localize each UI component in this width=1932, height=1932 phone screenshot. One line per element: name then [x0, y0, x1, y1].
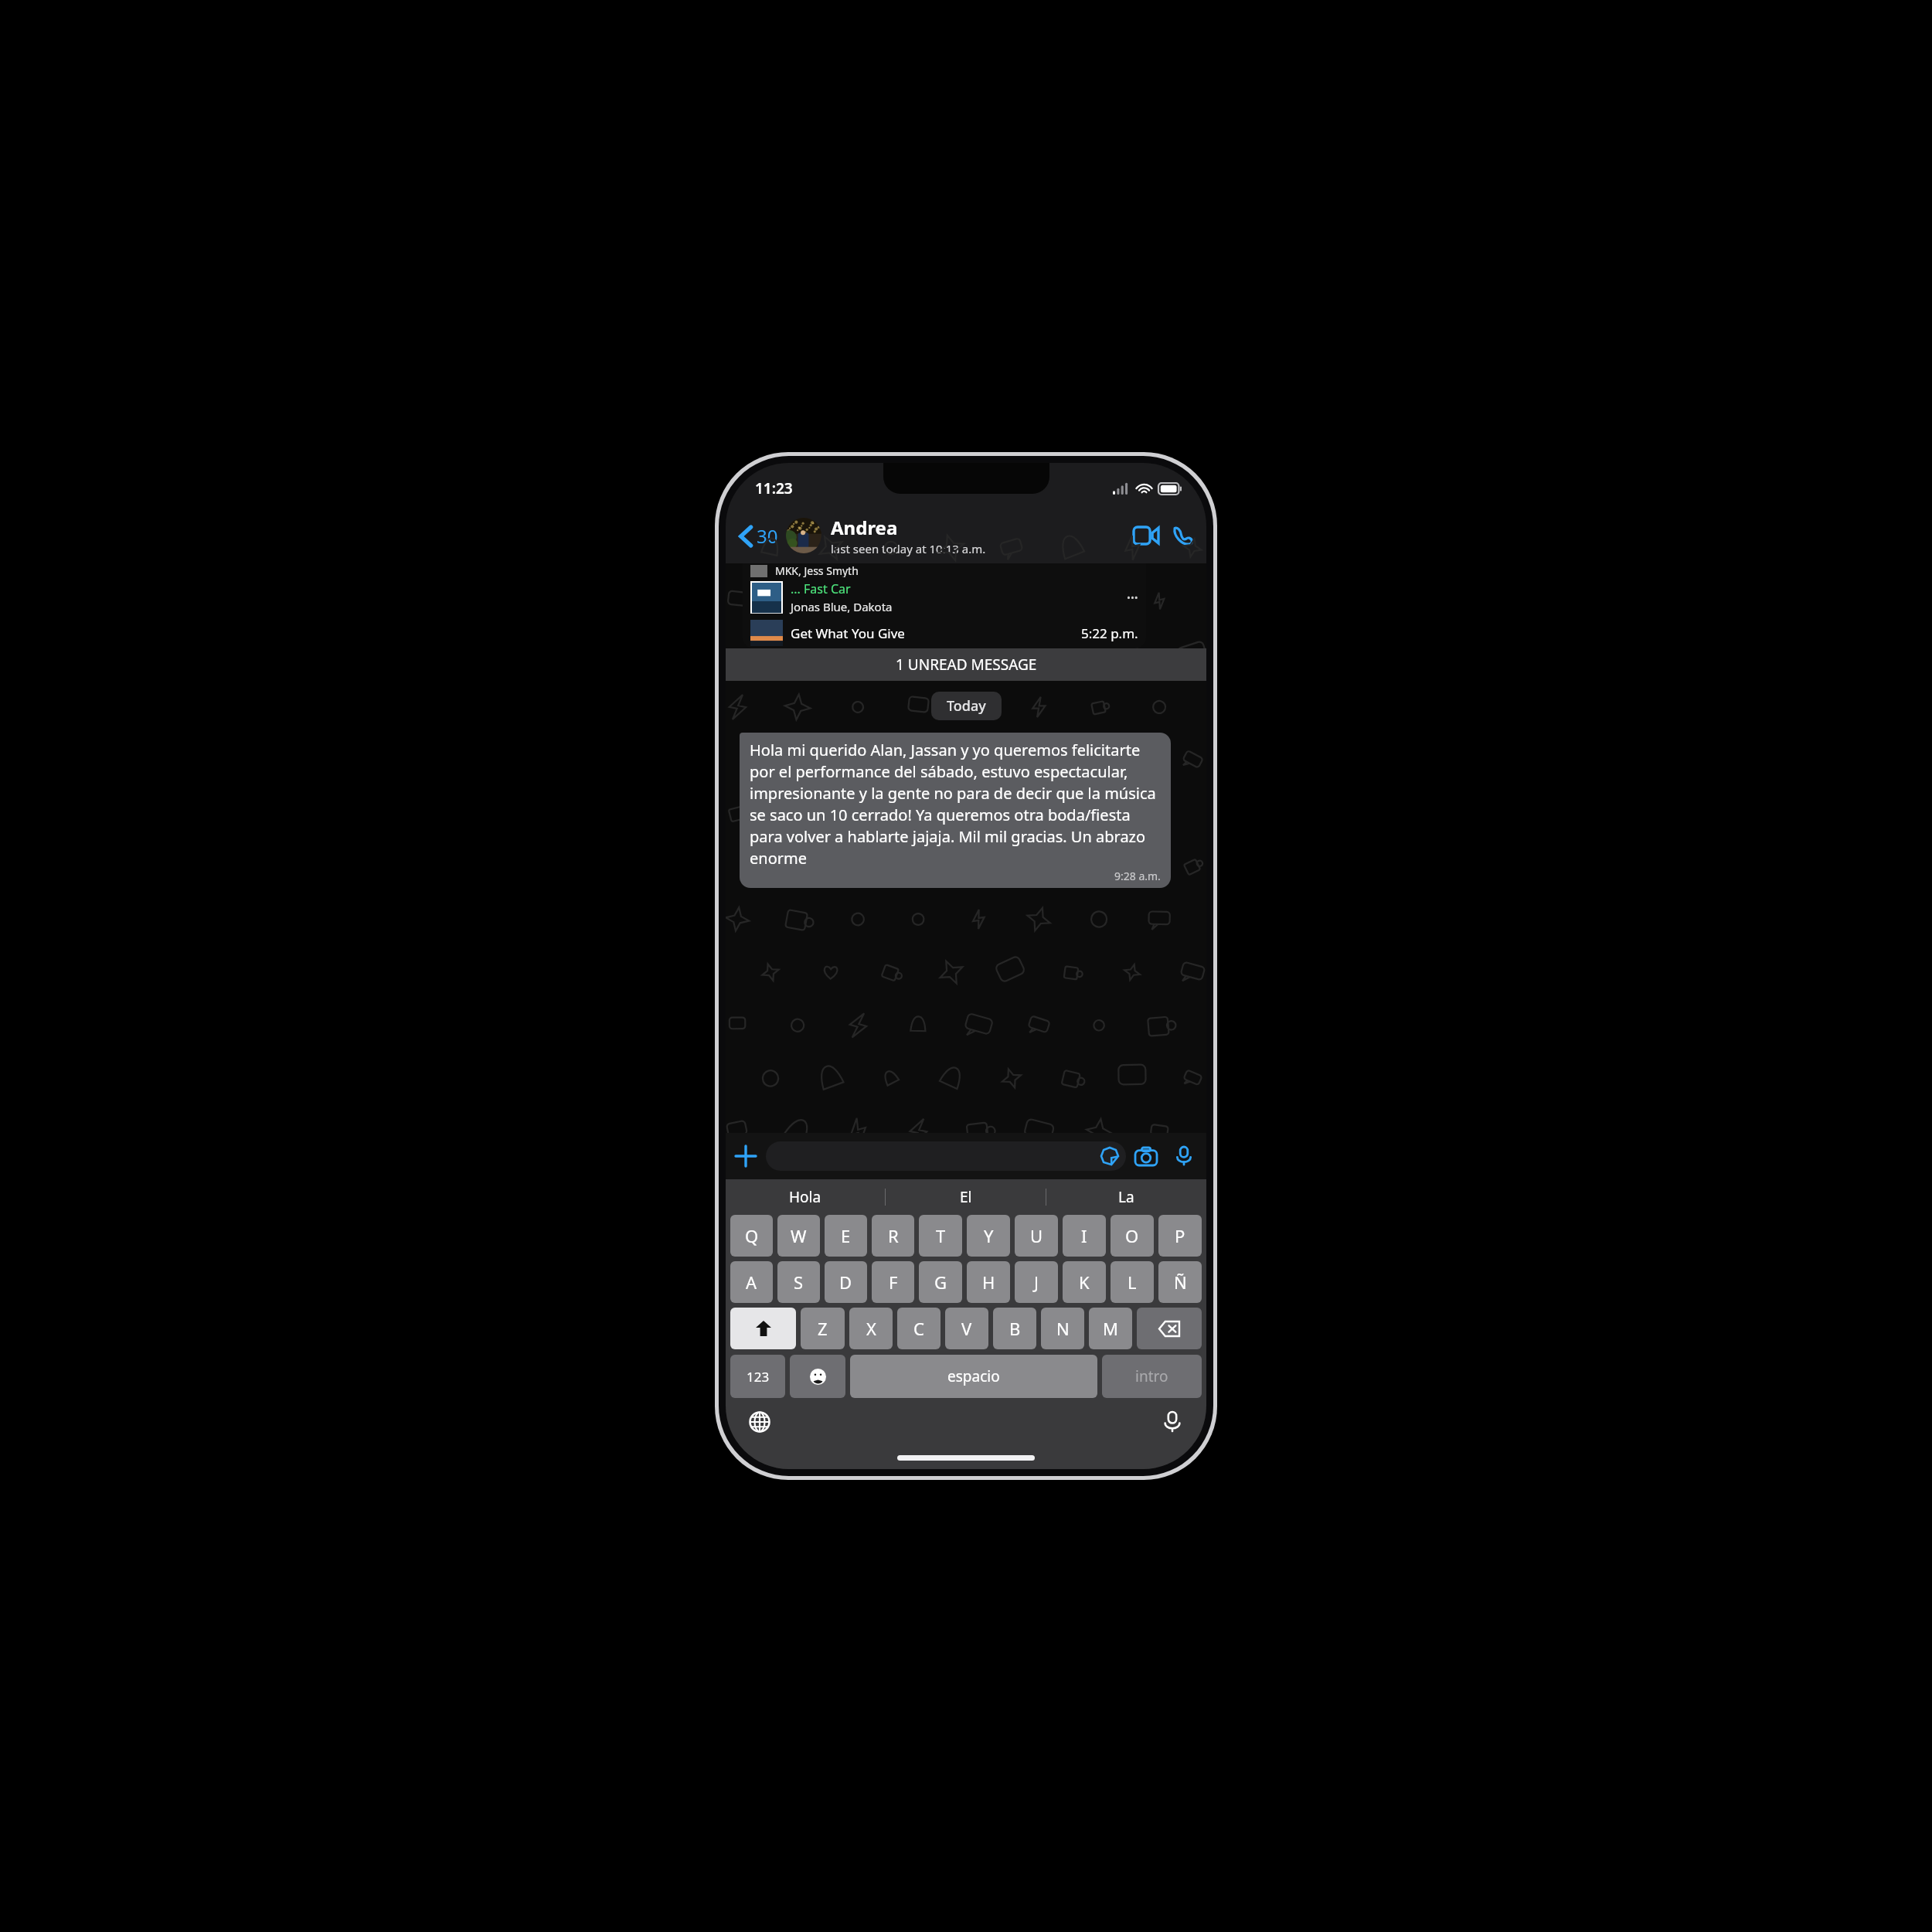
button[interactable]: I [1063, 1215, 1106, 1257]
button[interactable]: Today [947, 696, 986, 716]
button[interactable]: Hola [726, 1179, 885, 1215]
button[interactable]: A [730, 1261, 773, 1303]
button[interactable]: Change keyboard [743, 1405, 777, 1439]
button[interactable]: 30 [726, 517, 783, 555]
button[interactable]: Backspace [1137, 1308, 1202, 1349]
button[interactable]: Q [730, 1215, 773, 1257]
button[interactable]: Voice message [1166, 1136, 1202, 1176]
staticText: I [1081, 1224, 1087, 1247]
staticText: Get What You Give [791, 624, 905, 642]
staticText: Hola mi querido Alan, Jassan y yo querem… [750, 740, 1161, 869]
button[interactable]: H [967, 1261, 1010, 1303]
staticText: T [936, 1224, 946, 1247]
button[interactable]: Hola mi querido Alan, Jassan y yo querem… [740, 733, 1171, 888]
button[interactable]: O [1111, 1215, 1154, 1257]
staticText: El [960, 1187, 972, 1207]
button[interactable]: Video call [1126, 515, 1166, 556]
button[interactable]: L [1111, 1261, 1154, 1303]
staticText: Jonas Blue, Dakota [791, 599, 893, 614]
button[interactable]: X [849, 1308, 893, 1349]
staticText: Hola [789, 1187, 821, 1207]
staticText: X [866, 1317, 876, 1340]
button[interactable]: Emoji [790, 1355, 845, 1398]
button[interactable]: K [1063, 1261, 1106, 1303]
staticText: R [888, 1224, 899, 1247]
staticText: M [1103, 1317, 1118, 1340]
staticText: Z [818, 1317, 828, 1340]
staticText: H [982, 1270, 995, 1294]
staticText: C [913, 1317, 924, 1340]
staticText: espacio [947, 1366, 1000, 1386]
staticText: K [1079, 1270, 1090, 1294]
staticText: 5:22 p.m. [1081, 624, 1138, 642]
staticText: U [1030, 1224, 1043, 1247]
staticText: Today [947, 696, 986, 716]
staticText: F [889, 1270, 898, 1294]
staticText: Ñ [1174, 1270, 1187, 1294]
staticText: intro [1135, 1366, 1168, 1386]
staticText: A [746, 1270, 757, 1294]
staticText: S [794, 1270, 804, 1294]
staticText: B [1009, 1317, 1021, 1340]
button[interactable]: Dictation [1155, 1405, 1189, 1439]
button[interactable]: 123 [730, 1355, 785, 1398]
staticText: L [1128, 1270, 1137, 1294]
button[interactable]: Y [967, 1215, 1010, 1257]
staticText: N [1056, 1317, 1070, 1340]
button[interactable]: Attach [726, 1136, 766, 1176]
button[interactable]: W [777, 1215, 820, 1257]
button[interactable]: MKK, Jess Smyth [743, 563, 1146, 648]
button[interactable]: M [1089, 1308, 1132, 1349]
staticText: 123 [747, 1368, 770, 1386]
staticText: E [841, 1224, 851, 1247]
staticText: MKK, Jess Smyth [775, 563, 859, 577]
staticText: last seen today at 10:13 a.m. [831, 541, 986, 556]
button[interactable]: Z [801, 1308, 845, 1349]
staticText: 30 [757, 523, 778, 549]
button[interactable]: E [825, 1215, 867, 1257]
staticText: D [839, 1270, 852, 1294]
button[interactable]: La [1046, 1179, 1206, 1215]
button[interactable]: N [1041, 1308, 1084, 1349]
button[interactable]: Camera [1126, 1136, 1166, 1176]
button[interactable]: J [1015, 1261, 1058, 1303]
button[interactable]: Stickers [766, 1141, 1126, 1171]
staticText: P [1175, 1224, 1185, 1247]
button[interactable]: R [872, 1215, 914, 1257]
button[interactable]: Ñ [1158, 1261, 1202, 1303]
button[interactable]: S [777, 1261, 820, 1303]
staticText: J [1034, 1270, 1039, 1294]
staticText: V [961, 1317, 972, 1340]
staticText: ... Fast Car [791, 580, 851, 597]
button[interactable]: El [886, 1179, 1046, 1215]
staticText: 1 UNREAD MESSAGE [896, 655, 1037, 675]
button[interactable]: U [1015, 1215, 1058, 1257]
staticText: Q [745, 1224, 759, 1247]
other: Stickers [1101, 1148, 1118, 1165]
staticText: W [791, 1224, 807, 1247]
button[interactable]: B [993, 1308, 1036, 1349]
staticText: 11:23 [755, 478, 793, 498]
button[interactable]: Voice call [1166, 515, 1200, 556]
button[interactable]: P [1158, 1215, 1202, 1257]
staticText: La [1118, 1187, 1134, 1207]
button[interactable]: Shift [730, 1308, 796, 1349]
staticText: O [1125, 1224, 1139, 1247]
button[interactable]: D [825, 1261, 867, 1303]
button[interactable]: C [897, 1308, 940, 1349]
staticText: ••• [1127, 590, 1138, 604]
staticText: Andrea [831, 515, 898, 540]
staticText: 9:28 a.m. [1114, 869, 1161, 883]
button[interactable] [786, 518, 821, 553]
button[interactable]: G [919, 1261, 962, 1303]
button[interactable]: espacio [850, 1355, 1097, 1398]
button[interactable]: T [919, 1215, 962, 1257]
button[interactable]: Andrea [786, 515, 1126, 556]
button[interactable]: V [945, 1308, 988, 1349]
staticText: G [934, 1270, 947, 1294]
staticText: Y [984, 1224, 994, 1247]
button[interactable]: intro [1102, 1355, 1202, 1398]
button[interactable]: F [872, 1261, 914, 1303]
